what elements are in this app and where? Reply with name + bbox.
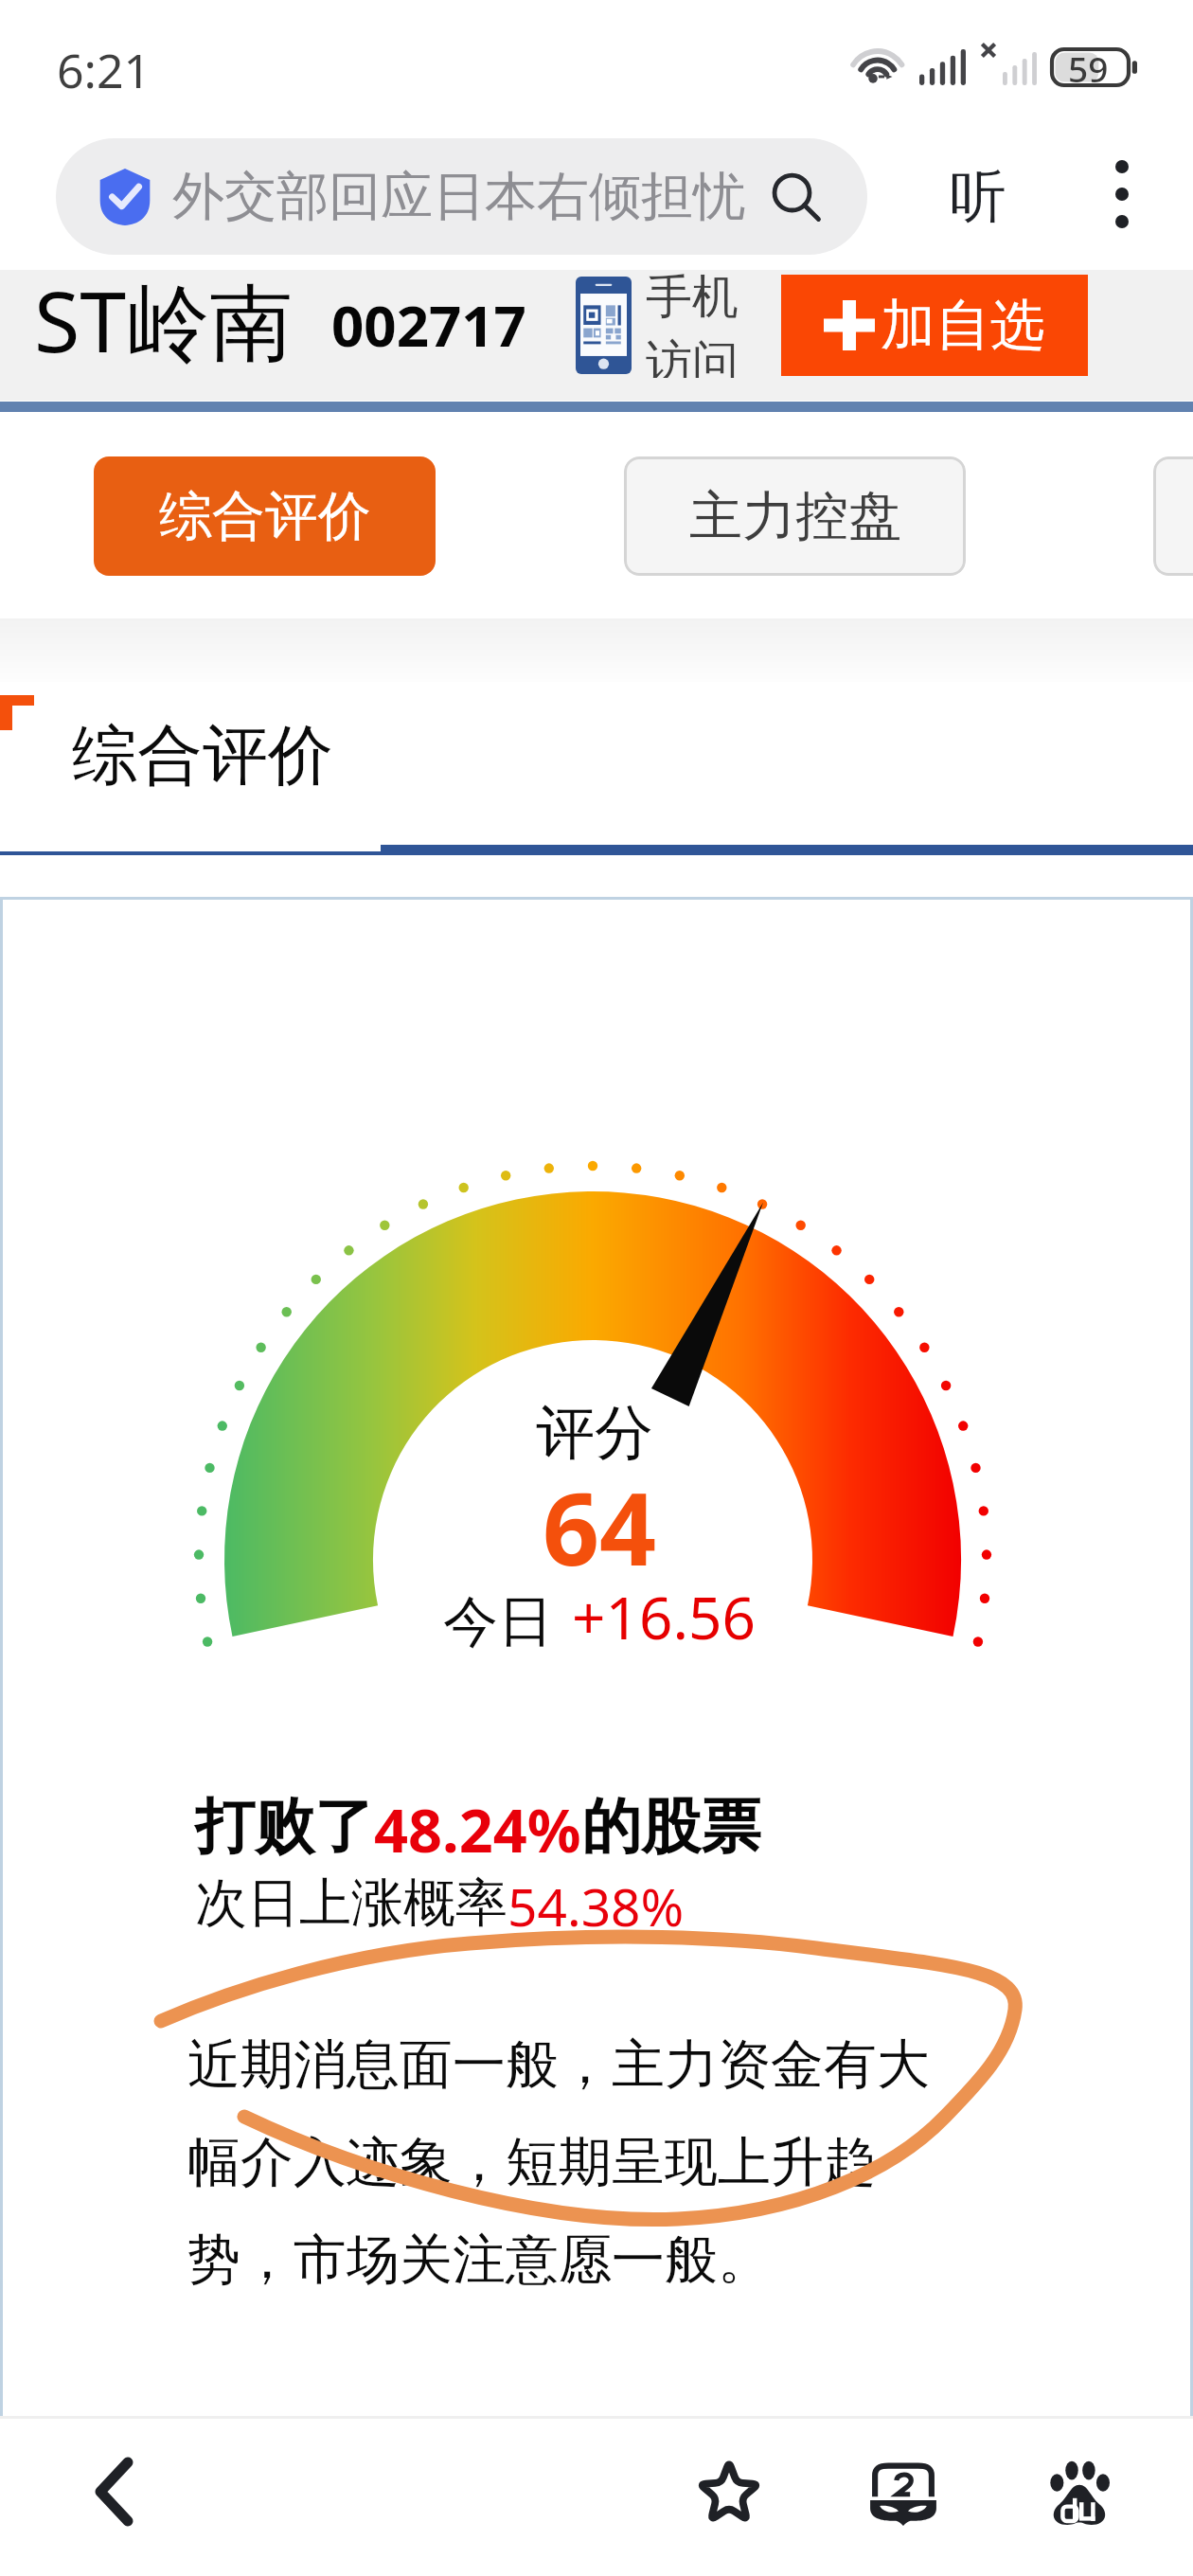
staticText: 次日上涨概率: [195, 1870, 507, 1936]
button[interactable]: More tabs: [1153, 456, 1193, 576]
staticText: 近期消息面一般，主力资金有大幅介入迹象，短期呈现上升趋势，市场关注意愿一般。: [187, 2031, 945, 2294]
button[interactable]: 外交部回应日本右倾担忧: [56, 138, 867, 255]
staticText: +16.56: [572, 1577, 756, 1656]
staticText: 64: [543, 1459, 657, 1595]
staticText: 访问: [646, 333, 739, 378]
staticText: 外交部回应日本右倾担忧: [172, 164, 745, 229]
button[interactable]: More options: [1079, 152, 1165, 237]
staticText: 的股票: [581, 1789, 760, 1864]
staticText: 48.24%: [374, 1789, 581, 1870]
staticText: 59: [1068, 45, 1109, 92]
staticText: 加自选: [881, 291, 1045, 360]
staticText: 002717: [331, 286, 526, 364]
staticText: 54.38%: [507, 1870, 685, 1941]
staticText: 手机: [646, 268, 739, 327]
staticText: 今日: [443, 1587, 553, 1656]
staticText: 主力控盘: [689, 483, 901, 550]
staticText: 综合评价: [72, 715, 333, 797]
button[interactable]: 主力控盘: [624, 456, 966, 576]
staticText: 听: [950, 161, 1006, 233]
staticText: 6:21: [57, 38, 151, 102]
staticText: 综合评价: [159, 483, 371, 550]
staticText: 评分: [536, 1396, 653, 1470]
button[interactable]: Bookmark: [677, 2441, 781, 2545]
staticText: ST岭南: [34, 263, 294, 377]
staticText: 打败了: [195, 1789, 374, 1864]
button[interactable]: Baidu home: [1027, 2441, 1131, 2545]
button[interactable]: 手机: [570, 270, 719, 380]
button[interactable]: 综合评价: [94, 456, 436, 576]
button[interactable]: Back: [62, 2440, 166, 2544]
button[interactable]: 听: [923, 142, 1032, 251]
button[interactable]: Tabs: [851, 2441, 955, 2545]
button[interactable]: 加自选: [781, 275, 1088, 376]
